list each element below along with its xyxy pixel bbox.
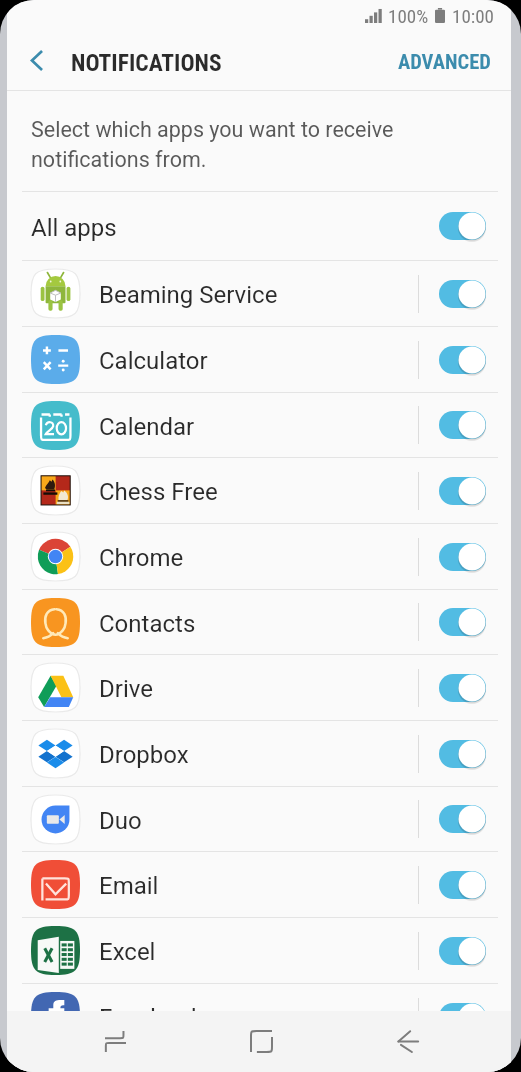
button[interactable]: Calendar (7, 393, 511, 457)
button[interactable]: Chrome (7, 524, 511, 589)
button[interactable]: Excel (7, 918, 511, 983)
button[interactable]: Navigate up (7, 31, 66, 90)
staticText: Calendar (99, 413, 418, 441)
button[interactable]: Recents (42, 1011, 188, 1072)
staticText: Contacts (99, 610, 418, 638)
staticText: Email (99, 872, 418, 900)
button[interactable]: Drive (7, 655, 511, 720)
button[interactable]: Dropbox (7, 721, 511, 786)
staticText: Drive (99, 675, 418, 703)
staticText: Duo (99, 807, 418, 835)
staticText: Calculator (99, 347, 418, 375)
staticText: 10:00 (452, 5, 494, 27)
button[interactable]: Back (335, 1011, 482, 1072)
button[interactable]: Contacts (7, 590, 511, 654)
button[interactable]: Facebook (7, 984, 511, 1049)
button[interactable]: All apps (7, 192, 511, 260)
staticText: ADVANCED (398, 50, 491, 74)
button[interactable]: Chess Free (7, 458, 511, 523)
staticText: Select which apps you want to receive no… (31, 117, 394, 172)
button[interactable]: ADVANCED (382, 31, 511, 90)
button[interactable]: Calculator (7, 327, 511, 392)
button[interactable]: Beaming Service (7, 261, 511, 326)
button[interactable]: Duo (7, 787, 511, 851)
staticText: Chess Free (99, 478, 418, 506)
staticText: All apps (31, 214, 439, 242)
staticText: Excel (99, 938, 418, 966)
staticText: Chrome (99, 544, 418, 572)
staticText: NOTIFICATIONS (71, 49, 222, 77)
button[interactable]: Home (188, 1011, 335, 1072)
button[interactable]: Email (7, 852, 511, 917)
staticText: Dropbox (99, 741, 418, 769)
staticText: Beaming Service (99, 281, 418, 309)
staticText: 100% (388, 5, 429, 27)
staticText: Facebook (99, 1004, 418, 1032)
